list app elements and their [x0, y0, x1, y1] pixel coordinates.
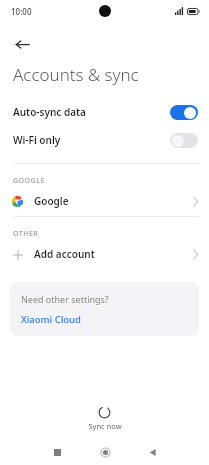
staticText: Wi-Fi only — [13, 133, 170, 147]
staticText: Accounts & sync — [13, 63, 139, 86]
button[interactable]: Recents — [46, 441, 68, 463]
staticText: OTHER — [13, 229, 39, 239]
staticText: Auto-sync data — [13, 105, 170, 119]
button[interactable]: Sync now — [0, 406, 209, 439]
staticText: Sync now — [88, 421, 122, 431]
staticText: Google — [34, 194, 193, 208]
button[interactable]: Wi-Fi only — [0, 126, 209, 154]
staticText: Need other settings? — [21, 293, 109, 305]
button[interactable]: Xiaomi Cloud — [21, 313, 81, 326]
staticText: GOOGLE — [13, 176, 45, 186]
button[interactable]: Back — [7, 29, 37, 59]
button[interactable]: Google — [0, 186, 209, 216]
button[interactable]: Add account — [0, 239, 209, 269]
button[interactable]: Back — [141, 441, 163, 463]
button[interactable]: Home — [94, 441, 116, 463]
staticText: 10:00 — [11, 6, 32, 17]
staticText: Add account — [34, 247, 193, 261]
button[interactable]: Auto-sync data — [0, 98, 209, 126]
